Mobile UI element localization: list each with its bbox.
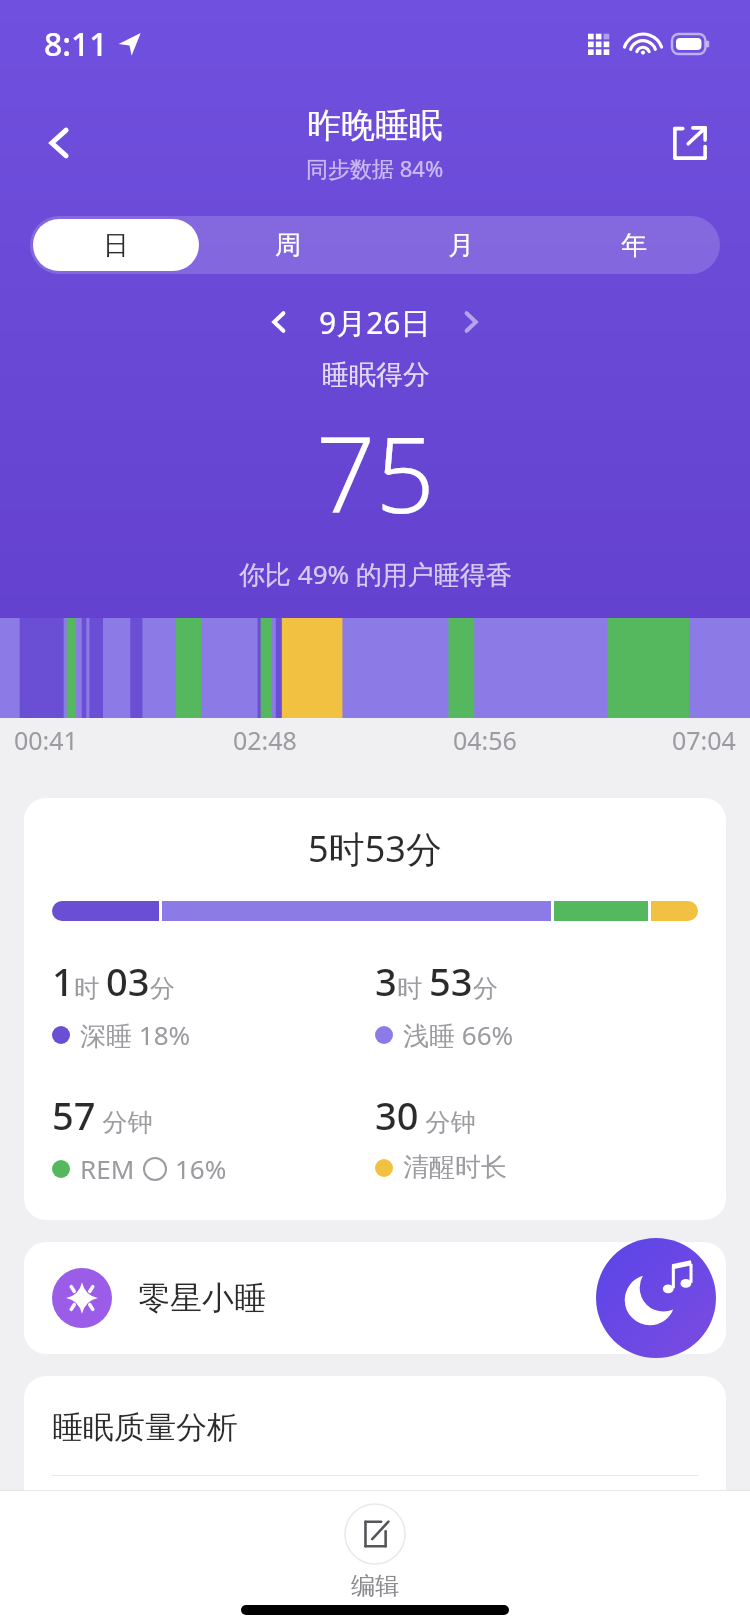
button[interactable]: 睡眠质量分析 (24, 1376, 726, 1608)
staticText: 零星小睡 (138, 1278, 266, 1318)
staticText: 57 (52, 1089, 96, 1141)
staticText: 年 (621, 229, 647, 262)
staticText: 同步数据 84% (306, 153, 444, 183)
staticText: 月 (448, 229, 474, 262)
button[interactable]: 日 (33, 219, 199, 271)
staticText: 睡眠得分 (322, 358, 430, 392)
staticText: 你比 49% 的用户睡得香 (239, 556, 512, 592)
staticText: 睡眠质量分析 (52, 1408, 238, 1447)
staticText: 1 (52, 955, 74, 1007)
button[interactable]: 周 (205, 219, 371, 271)
staticText: 浅睡 66% (403, 1017, 514, 1053)
staticText: 04:56 (453, 723, 517, 757)
staticText: 时 (397, 970, 429, 1004)
other: REM info (143, 1157, 167, 1181)
staticText: 编辑 (351, 1571, 399, 1601)
staticText: 分钟 (419, 1104, 476, 1138)
staticText: 分钟 (96, 1104, 153, 1138)
staticText: 深睡 18% (80, 1017, 191, 1053)
button[interactable]: 年 (550, 219, 717, 271)
staticText: 75 (316, 402, 435, 544)
staticText: 分 (150, 973, 175, 1004)
staticText: 周 (275, 229, 301, 262)
staticText: 8:11 (44, 22, 108, 66)
staticText: 时 (74, 970, 106, 1004)
button[interactable]: Share (656, 109, 724, 177)
button[interactable]: 零星小睡 (24, 1242, 726, 1354)
button[interactable]: 月 (377, 219, 544, 271)
staticText: 清醒时长 (403, 1151, 507, 1184)
staticText: 00:41 (14, 723, 78, 757)
staticText: 日 (103, 229, 129, 262)
button[interactable]: 5时53分 (24, 798, 726, 1220)
staticText: REM (80, 1151, 135, 1186)
button[interactable]: Next day (445, 296, 497, 348)
staticText: 分 (473, 973, 498, 1004)
button[interactable]: Back (26, 109, 94, 177)
staticText: 9月26日 (319, 302, 431, 343)
staticText: 16% (175, 1151, 227, 1186)
staticText: 02:48 (233, 723, 297, 757)
staticText: 3 (375, 955, 397, 1007)
button[interactable]: Previous day (253, 296, 305, 348)
staticText: 30 (375, 1089, 419, 1141)
staticText: 5时53分 (52, 824, 698, 873)
staticText: 0 分钟 (613, 1278, 698, 1319)
staticText: 53 (429, 955, 473, 1007)
staticText: 昨晚睡眠 (307, 104, 443, 147)
button[interactable]: 编辑 (328, 1499, 422, 1605)
button[interactable]: Sleep sounds (596, 1238, 716, 1358)
staticText: 07:04 (672, 723, 736, 757)
staticText: 03 (106, 955, 150, 1007)
